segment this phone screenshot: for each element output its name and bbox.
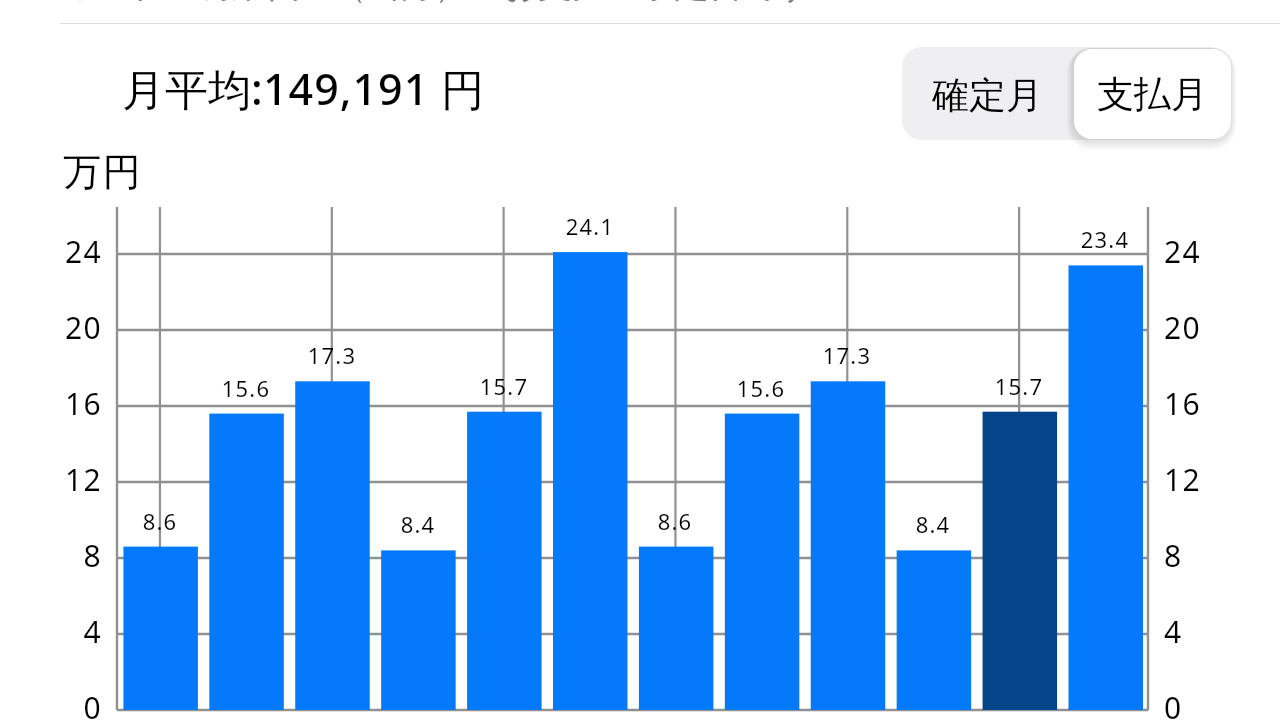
staticText: 20 xyxy=(1164,307,1202,348)
button[interactable]: 17.3万円 xyxy=(295,381,370,710)
staticText: 0 xyxy=(1164,687,1183,720)
staticText: 23.4 xyxy=(1060,224,1150,254)
button[interactable]: 15.7万円 xyxy=(466,412,541,710)
button[interactable]: 確定月 xyxy=(902,47,1073,140)
staticText: 支払月 xyxy=(1097,71,1208,118)
staticText: 16 xyxy=(30,383,102,424)
staticText: 8.4 xyxy=(888,509,978,539)
staticText: 17.3 xyxy=(287,340,377,370)
staticText: 8.6 xyxy=(115,506,205,536)
staticText: 円 xyxy=(430,59,485,118)
staticText: 15.7 xyxy=(974,371,1064,401)
button[interactable]: 23.4万円 xyxy=(1068,265,1143,710)
button[interactable]: 8.6万円 xyxy=(123,547,198,710)
staticText: 24.1 xyxy=(545,211,635,241)
staticText: 24 xyxy=(1164,231,1202,272)
button[interactable]: 24.1万円 xyxy=(552,252,627,710)
staticText: 12 xyxy=(1164,459,1202,500)
button[interactable]: 8.4万円 xyxy=(380,550,455,710)
staticText: 万円 xyxy=(63,148,142,196)
button[interactable]: 15.7万円 xyxy=(982,412,1057,710)
staticText: 8.4 xyxy=(373,509,463,539)
staticText: 15.6 xyxy=(201,373,291,403)
staticText: 8 xyxy=(1164,535,1183,576)
button[interactable]: 8.6万円 xyxy=(638,547,713,710)
staticText: 12 xyxy=(30,459,102,500)
staticText: 4 xyxy=(30,611,102,652)
staticText: 149,191 xyxy=(263,59,430,118)
staticText: 4 xyxy=(1164,611,1183,652)
staticText: 月平均: xyxy=(122,59,263,118)
button[interactable]: 8.4万円 xyxy=(896,550,971,710)
button[interactable]: 支払月 xyxy=(1073,47,1231,140)
button[interactable]: 17.3万円 xyxy=(810,381,885,710)
staticText: 0 xyxy=(30,687,102,720)
staticText: 16 xyxy=(1164,383,1202,424)
button[interactable]: 15.6万円 xyxy=(209,414,284,710)
staticText: 確定月 xyxy=(932,72,1043,119)
other: 月別支払額の棒グラフ xyxy=(0,0,1280,720)
staticText: 15.6 xyxy=(716,373,806,403)
staticText: カードご利用代金（当月）のお支払い予定日です xyxy=(58,0,813,6)
staticText: 20 xyxy=(30,307,102,348)
button[interactable]: 15.6万円 xyxy=(724,414,799,710)
staticText: 24 xyxy=(30,231,102,272)
staticText: 15.7 xyxy=(459,371,549,401)
staticText: 8.6 xyxy=(630,506,720,536)
staticText: 8 xyxy=(30,535,102,576)
staticText: 17.3 xyxy=(802,340,892,370)
